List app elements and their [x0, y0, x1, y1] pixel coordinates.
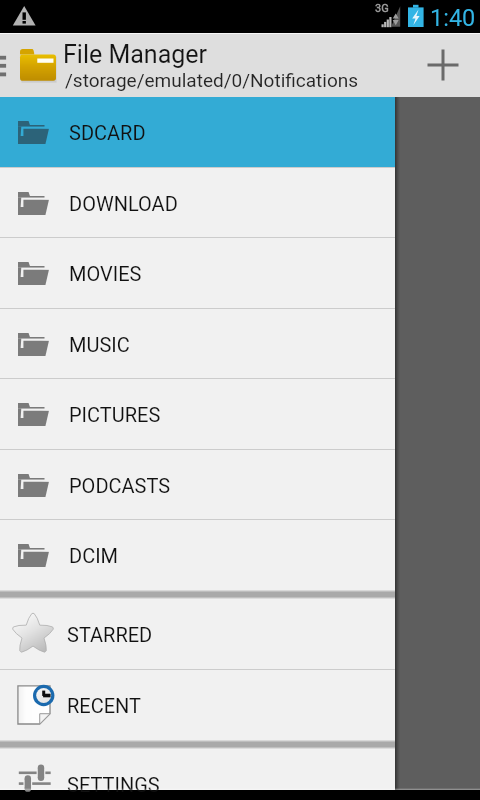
button[interactable]: Open navigation drawer	[0, 33, 8, 97]
staticText: 3G	[375, 2, 389, 15]
staticText: PICTURES	[69, 403, 161, 426]
staticText: File Manager	[63, 40, 208, 69]
staticText: PODCASTS	[69, 474, 171, 497]
button[interactable]: PICTURES	[0, 379, 395, 449]
staticText: DCIM	[69, 544, 119, 567]
button[interactable]: RECENT	[0, 670, 395, 740]
staticText: 1:40	[430, 4, 476, 32]
staticText: MOVIES	[69, 262, 142, 285]
button[interactable]: STARRED	[0, 599, 395, 669]
staticText: STARRED	[67, 623, 153, 646]
button[interactable]: MUSIC	[0, 309, 395, 379]
staticText: MUSIC	[69, 333, 130, 356]
staticText: SETTINGS	[67, 773, 160, 796]
button[interactable]: PODCASTS	[0, 450, 395, 520]
staticText: DOWNLOAD	[69, 192, 178, 215]
staticText: RECENT	[67, 694, 141, 717]
staticText: /storage/emulated/0/Notifications	[65, 69, 359, 91]
button[interactable]: SDCARD	[0, 97, 395, 167]
staticText: SDCARD	[69, 121, 146, 144]
button[interactable]: DCIM	[0, 520, 395, 590]
button[interactable]: SETTINGS	[0, 749, 395, 800]
button[interactable]: Add	[411, 33, 475, 97]
button[interactable]: MOVIES	[0, 238, 395, 308]
button[interactable]: DOWNLOAD	[0, 168, 395, 238]
